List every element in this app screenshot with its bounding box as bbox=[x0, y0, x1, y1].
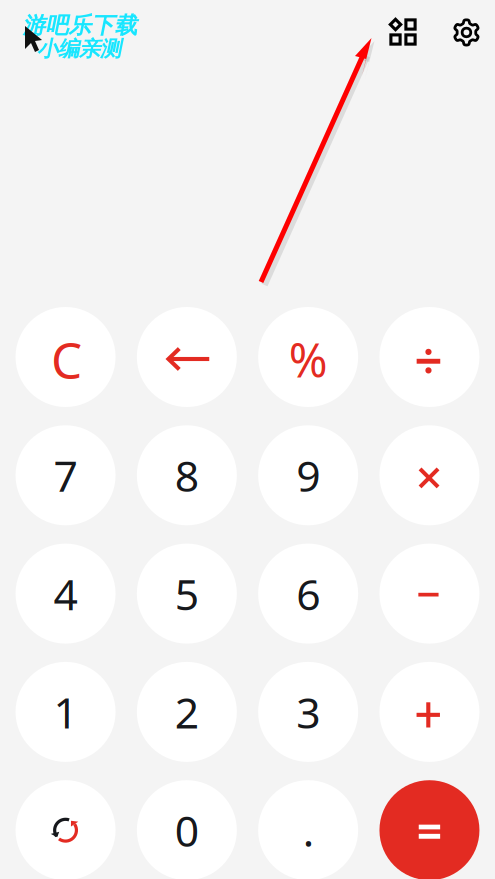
staticText: 1 bbox=[54, 684, 78, 740]
staticText: 9 bbox=[296, 447, 320, 504]
button[interactable]: 5 bbox=[137, 544, 237, 644]
staticText: . bbox=[303, 802, 314, 859]
button[interactable]: 9 bbox=[258, 425, 358, 525]
button[interactable]: 3 bbox=[258, 662, 358, 762]
staticText: 6 bbox=[296, 565, 320, 622]
button[interactable]: 2 bbox=[137, 662, 237, 762]
staticText: 3 bbox=[296, 684, 320, 740]
staticText: 2 bbox=[175, 684, 199, 740]
button[interactable]: 8 bbox=[137, 425, 237, 525]
button[interactable]: Minus bbox=[379, 544, 479, 644]
staticText: C bbox=[51, 326, 82, 392]
staticText: 4 bbox=[54, 565, 78, 622]
button[interactable]: 7 bbox=[16, 425, 116, 525]
staticText: 0 bbox=[175, 802, 199, 859]
button[interactable]: Unit converter bbox=[379, 8, 427, 56]
staticText: 小编亲测 bbox=[37, 36, 121, 62]
button[interactable] bbox=[16, 307, 116, 407]
button[interactable]: Settings bbox=[442, 8, 490, 56]
button[interactable]: Divide bbox=[379, 307, 479, 407]
button[interactable]: 0 bbox=[137, 780, 237, 879]
button[interactable] bbox=[258, 307, 358, 407]
button[interactable]: 6 bbox=[258, 544, 358, 644]
staticText: 7 bbox=[54, 447, 78, 504]
button[interactable]: 4 bbox=[16, 544, 116, 644]
button[interactable]: Plus bbox=[379, 662, 479, 762]
staticText: 8 bbox=[175, 447, 199, 504]
button[interactable]: 1 bbox=[16, 662, 116, 762]
button[interactable]: Multiply bbox=[379, 425, 479, 525]
button[interactable]: Equals bbox=[379, 780, 479, 879]
staticText: 5 bbox=[175, 565, 199, 622]
staticText: % bbox=[289, 328, 328, 390]
button[interactable]: Convert bbox=[16, 780, 116, 879]
button[interactable]: . bbox=[258, 780, 358, 879]
button[interactable]: Backspace bbox=[137, 307, 237, 407]
staticText: 游吧乐下载 bbox=[22, 12, 137, 39]
